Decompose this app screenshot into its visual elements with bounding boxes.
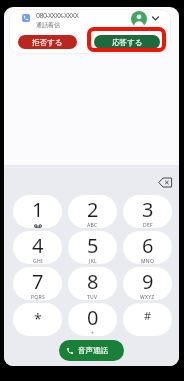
button[interactable]: 4 (13, 231, 62, 264)
button[interactable]: 9 (123, 267, 172, 300)
staticText: 6 (142, 232, 154, 259)
button[interactable]: # (123, 303, 172, 336)
button[interactable]: 5 (68, 231, 117, 264)
staticText: MNO (141, 258, 155, 264)
staticText: * (34, 309, 42, 328)
button[interactable]: 080-XXXX-XXXX (9, 9, 171, 54)
button[interactable] (155, 174, 176, 191)
staticText: WXYZ (140, 294, 155, 300)
staticText: TUV (87, 294, 98, 300)
button[interactable]: * (13, 303, 62, 336)
staticText: 9 (142, 268, 154, 295)
staticText: GHI (33, 258, 43, 264)
button[interactable]: 7 (13, 267, 62, 300)
staticText: 拒否する (32, 38, 63, 47)
staticText: 2 (87, 196, 99, 223)
staticText: 080-XXXX-XXXX (36, 11, 79, 21)
staticText: 5 (87, 232, 99, 259)
staticText: 3 (142, 196, 154, 223)
staticText: 7 (32, 268, 44, 295)
staticText: # (144, 308, 152, 323)
staticText: + (91, 330, 95, 336)
staticText: DEF (143, 222, 153, 228)
staticText: ABC (87, 222, 98, 228)
button[interactable]: 6 (123, 231, 172, 264)
staticText: 4 (32, 232, 44, 259)
staticText: 応答する (112, 38, 143, 47)
button[interactable]: 1 (13, 195, 62, 228)
button[interactable]: 2 (68, 195, 117, 228)
staticText: 1 (32, 196, 44, 223)
button[interactable]: 8 (68, 267, 117, 300)
staticText: 0 (87, 304, 99, 331)
staticText: PQRS (31, 294, 45, 300)
button[interactable]: 応答する (94, 35, 160, 49)
button[interactable]: 3 (123, 195, 172, 228)
staticText: 音声通話 (78, 346, 108, 355)
button[interactable]: 0 (68, 303, 117, 336)
staticText: 通話着信 (36, 21, 60, 29)
staticText: JKL (89, 258, 97, 264)
staticText: 8 (87, 268, 99, 295)
button[interactable]: 拒否する (18, 35, 77, 49)
button[interactable]: 音声通話 (59, 340, 124, 361)
